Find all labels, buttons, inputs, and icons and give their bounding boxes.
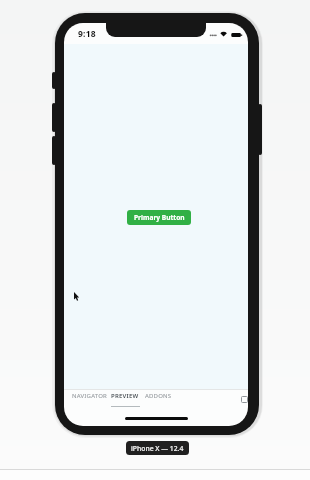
button[interactable]: NAVIGATOR bbox=[72, 392, 108, 400]
button[interactable]: PREVIEW bbox=[111, 392, 139, 400]
staticText: 9:18 bbox=[78, 28, 96, 40]
button[interactable]: ADDONS bbox=[145, 392, 172, 400]
button[interactable] bbox=[241, 396, 248, 403]
staticText: Primary Button bbox=[134, 213, 185, 222]
button[interactable]: Primary Button bbox=[127, 210, 191, 225]
staticText: iPhone X — 12.4 bbox=[131, 444, 184, 453]
